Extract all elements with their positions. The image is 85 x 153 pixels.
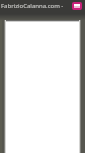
button[interactable]: FabrizioCalanna.com - — [0, 0, 70, 11]
staticText: FabrizioCalanna.com - — [1, 2, 65, 10]
button[interactable]: Tabs — [72, 2, 82, 10]
